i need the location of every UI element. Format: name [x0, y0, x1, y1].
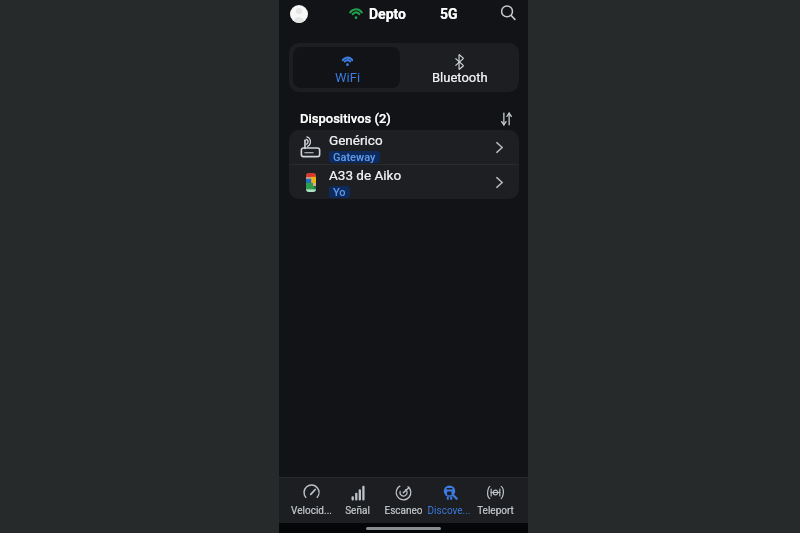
staticText: WiFi [335, 70, 361, 85]
staticText: Genérico [329, 132, 383, 148]
staticText: Señal [345, 505, 370, 517]
staticText: Escaneo [384, 505, 423, 517]
staticText: Discove... [427, 505, 471, 517]
staticText: Gateway [333, 151, 376, 163]
staticText: Bluetooth [432, 70, 488, 85]
button[interactable]: A33 de Aiko [289, 165, 519, 199]
button[interactable]: Sort [497, 110, 515, 127]
button[interactable]: Velocid... [289, 477, 334, 522]
button[interactable]: Teleport [472, 477, 518, 522]
button[interactable]: Discove... [426, 477, 472, 522]
staticText: A33 de Aiko [329, 167, 402, 183]
button[interactable]: Search [497, 2, 519, 24]
staticText: Velocid... [291, 505, 332, 517]
staticText: Teleport [477, 505, 514, 517]
button[interactable]: Señal [334, 477, 380, 522]
staticText: Dispositivos (2) [300, 111, 391, 126]
button[interactable]: Genérico [289, 130, 519, 164]
staticText: Depto [369, 6, 406, 22]
button[interactable]: Bluetooth [404, 43, 519, 92]
staticText: Yo [333, 186, 346, 198]
staticText: 5G [440, 6, 458, 22]
button[interactable]: Profile [290, 5, 308, 23]
button[interactable]: Escaneo [380, 477, 426, 522]
button[interactable]: WiFi [293, 47, 400, 88]
